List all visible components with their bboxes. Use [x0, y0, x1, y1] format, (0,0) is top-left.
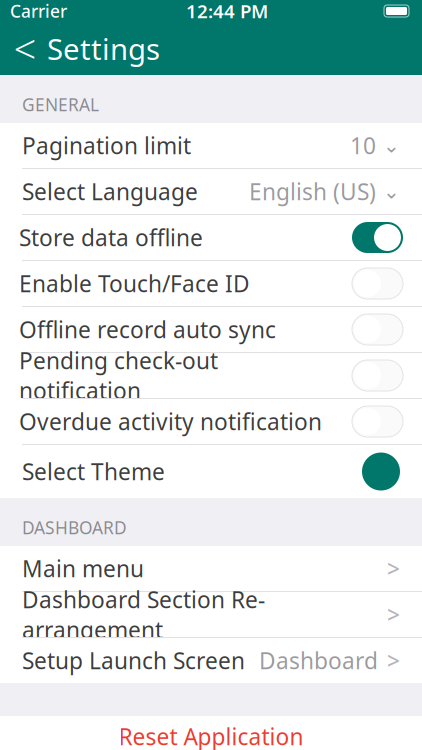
staticText: Enable Touch/Face ID	[19, 268, 250, 299]
staticText: Main menu	[22, 553, 144, 584]
button[interactable]: Setup Launch Screen	[0, 638, 422, 683]
button[interactable]: Reset Application	[0, 716, 422, 750]
staticText: Overdue activity notification	[19, 406, 322, 437]
staticText: GENERAL	[22, 93, 99, 116]
staticText: Pending check-out notification	[19, 345, 218, 406]
button[interactable]: Store data offline	[0, 215, 422, 260]
staticText: >	[387, 599, 400, 630]
button[interactable]: Select Language	[0, 169, 422, 214]
button[interactable]: Overdue activity notification	[0, 399, 422, 444]
staticText: Select Theme	[22, 456, 165, 487]
staticText: ⌄	[383, 134, 400, 157]
button[interactable]: Pagination limit	[0, 123, 422, 168]
button[interactable]: Main menu	[0, 546, 422, 591]
staticText: Dashboard	[259, 645, 378, 676]
staticText: Setup Launch Screen	[22, 645, 245, 676]
staticText: English (US)	[249, 176, 376, 207]
staticText: DASHBOARD	[22, 516, 127, 539]
staticText: Carrier	[10, 0, 67, 22]
staticText: >	[387, 553, 400, 584]
staticText: Select Language	[22, 176, 198, 207]
staticText: Offline record auto sync	[19, 314, 276, 345]
button[interactable]: Enable Touch/Face ID	[0, 261, 422, 306]
staticText: Dashboard Section Re-arrangement	[22, 584, 265, 645]
staticText: Pagination limit	[22, 130, 191, 161]
button[interactable]: Pending check-out notification	[0, 353, 422, 398]
button[interactable]: Dashboard Section Re-arrangement	[0, 592, 422, 637]
staticText: Reset Application	[118, 721, 303, 750]
button[interactable]: Select Theme	[0, 445, 422, 498]
staticText: 12:44 PM	[186, 0, 268, 23]
staticText: Settings	[47, 29, 160, 68]
button[interactable]: Offline record auto sync	[0, 307, 422, 352]
staticText: <	[13, 22, 36, 75]
staticText: Store data offline	[19, 222, 203, 253]
staticText: ⌄	[383, 180, 400, 203]
staticText: >	[387, 645, 400, 676]
button[interactable]: <	[0, 16, 160, 81]
staticText: 10	[350, 130, 376, 161]
